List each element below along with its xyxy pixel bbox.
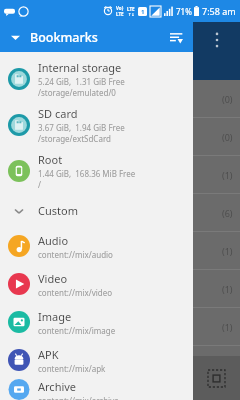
- staticText: 3.67 GiB, 1.94 GiB Free: [38, 122, 125, 133]
- staticText: 1: [141, 8, 145, 16]
- staticText: Internal storage: [38, 60, 122, 75]
- button[interactable]: (0): [193, 118, 240, 156]
- staticText: (0): [222, 131, 233, 143]
- staticText: APK: [38, 347, 59, 362]
- staticText: Image: [38, 309, 72, 324]
- staticText: content://mix/video: [38, 287, 113, 298]
- staticText: content://mix/audio: [38, 249, 113, 260]
- staticText: /storage/extSdCard: [38, 133, 111, 144]
- button[interactable]: Expand: [0, 22, 30, 52]
- button[interactable]: (1): [193, 232, 240, 270]
- button[interactable]: Root: [0, 148, 193, 194]
- button[interactable]: Select: [193, 356, 240, 400]
- button[interactable]: (0): [193, 80, 240, 118]
- staticText: Vo): [116, 5, 124, 11]
- staticText: (1): [222, 359, 233, 371]
- staticText: content://mix/image: [38, 325, 116, 336]
- staticText: (1): [222, 386, 233, 398]
- button[interactable]: (1): [193, 270, 240, 308]
- staticText: 7:58 am: [202, 5, 236, 17]
- staticText: Bookmarks: [30, 29, 98, 46]
- staticText: (1): [222, 283, 233, 295]
- button[interactable]: Image: [0, 303, 193, 341]
- button[interactable]: (1): [193, 384, 240, 400]
- staticText: (1): [222, 245, 233, 257]
- staticText: LTE: [127, 6, 135, 12]
- button[interactable]: Custom: [0, 194, 193, 227]
- staticText: /storage/emulated/0: [38, 87, 116, 98]
- button[interactable]: (1): [193, 308, 240, 346]
- button[interactable]: Archive: [0, 379, 193, 400]
- staticText: 71%: [176, 6, 192, 17]
- staticText: Custom: [38, 203, 78, 218]
- staticText: content://mix/apk: [38, 363, 106, 374]
- button[interactable]: (6): [193, 194, 240, 232]
- button[interactable]: Audio: [0, 227, 193, 265]
- staticText: Audio: [38, 233, 69, 248]
- staticText: /: [38, 179, 41, 190]
- button[interactable]: More options: [193, 22, 240, 80]
- button[interactable]: APK: [0, 341, 193, 379]
- staticText: (1): [222, 321, 233, 333]
- button[interactable]: SD card: [0, 102, 193, 148]
- staticText: (0): [222, 93, 233, 105]
- staticText: ↑↓: [128, 12, 135, 17]
- staticText: SD card: [38, 106, 78, 121]
- staticText: 1.44 GiB, 168.36 MiB Free: [38, 168, 136, 179]
- staticText: Root: [38, 152, 63, 167]
- button[interactable]: (1): [193, 346, 240, 384]
- staticText: Video: [38, 271, 68, 286]
- staticText: content://mix/archive: [38, 395, 119, 400]
- staticText: LTE: [116, 11, 124, 17]
- staticText: (6): [222, 207, 233, 219]
- button[interactable]: Video: [0, 265, 193, 303]
- button[interactable]: Sort: [159, 22, 193, 52]
- button[interactable]: Internal storage: [0, 56, 193, 102]
- staticText: (1): [222, 169, 233, 181]
- staticText: 5.24 GiB, 1.31 GiB Free: [38, 76, 125, 87]
- button[interactable]: (1): [193, 156, 240, 194]
- staticText: Archive: [38, 379, 77, 394]
